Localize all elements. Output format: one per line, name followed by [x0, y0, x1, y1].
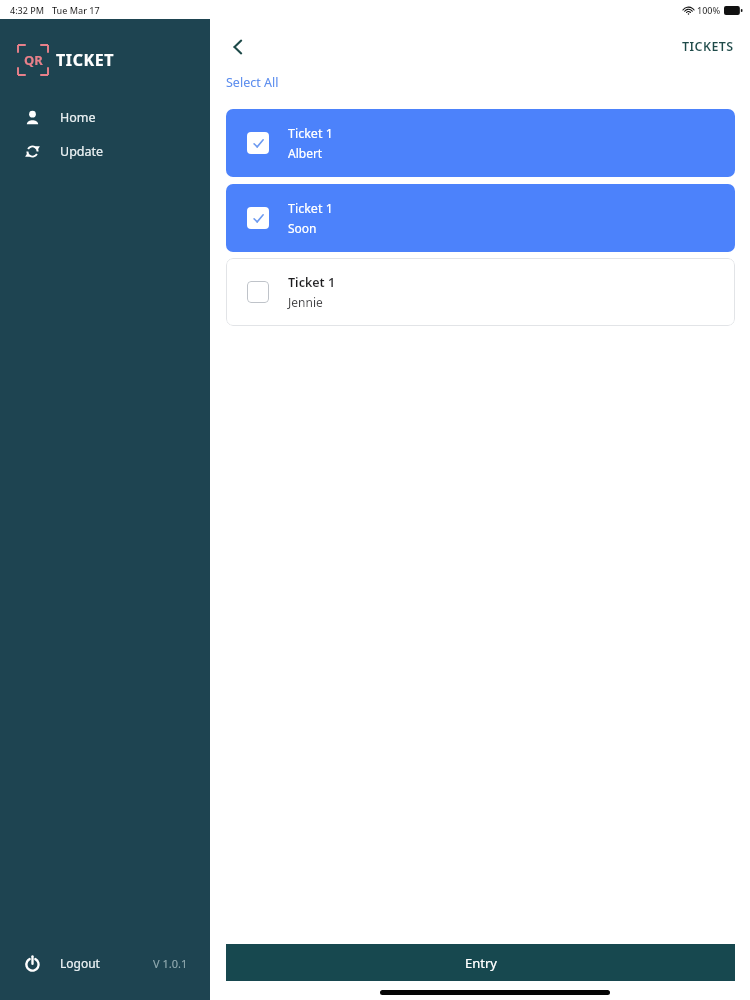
staticText: Albert [288, 145, 323, 161]
staticText: Select All [226, 74, 279, 91]
staticText: Jennie [288, 294, 323, 310]
staticText: QR [24, 51, 43, 69]
staticText: Entry [465, 954, 497, 972]
button[interactable]: Logout [0, 939, 210, 987]
staticText: Tue Mar 17 [52, 4, 100, 16]
button[interactable]: Selected [247, 132, 269, 154]
staticText: Update [60, 143, 104, 160]
staticText: TICKET [56, 49, 115, 71]
button[interactable]: Not selected [247, 281, 269, 303]
staticText: Ticket 1 [288, 125, 333, 142]
button[interactable]: Select All [226, 74, 279, 91]
button[interactable]: Back [218, 27, 258, 67]
staticText: Ticket 1 [288, 200, 333, 217]
button[interactable]: Not selected [226, 258, 735, 326]
staticText: Soon [288, 220, 317, 236]
button[interactable]: Entry [226, 944, 735, 981]
staticText: Ticket 1 [288, 274, 336, 291]
staticText: 100% [697, 4, 721, 16]
button[interactable]: Selected [226, 109, 735, 177]
button[interactable]: Home [0, 100, 210, 134]
staticText: Home [60, 109, 96, 126]
staticText: 4:32 PM [10, 4, 44, 16]
staticText: V 1.0.1 [153, 956, 188, 971]
staticText: TICKETS [682, 38, 734, 55]
button[interactable]: Selected [226, 184, 735, 252]
button[interactable]: Selected [247, 207, 269, 229]
button[interactable]: Update [0, 134, 210, 168]
staticText: Logout [60, 955, 100, 971]
